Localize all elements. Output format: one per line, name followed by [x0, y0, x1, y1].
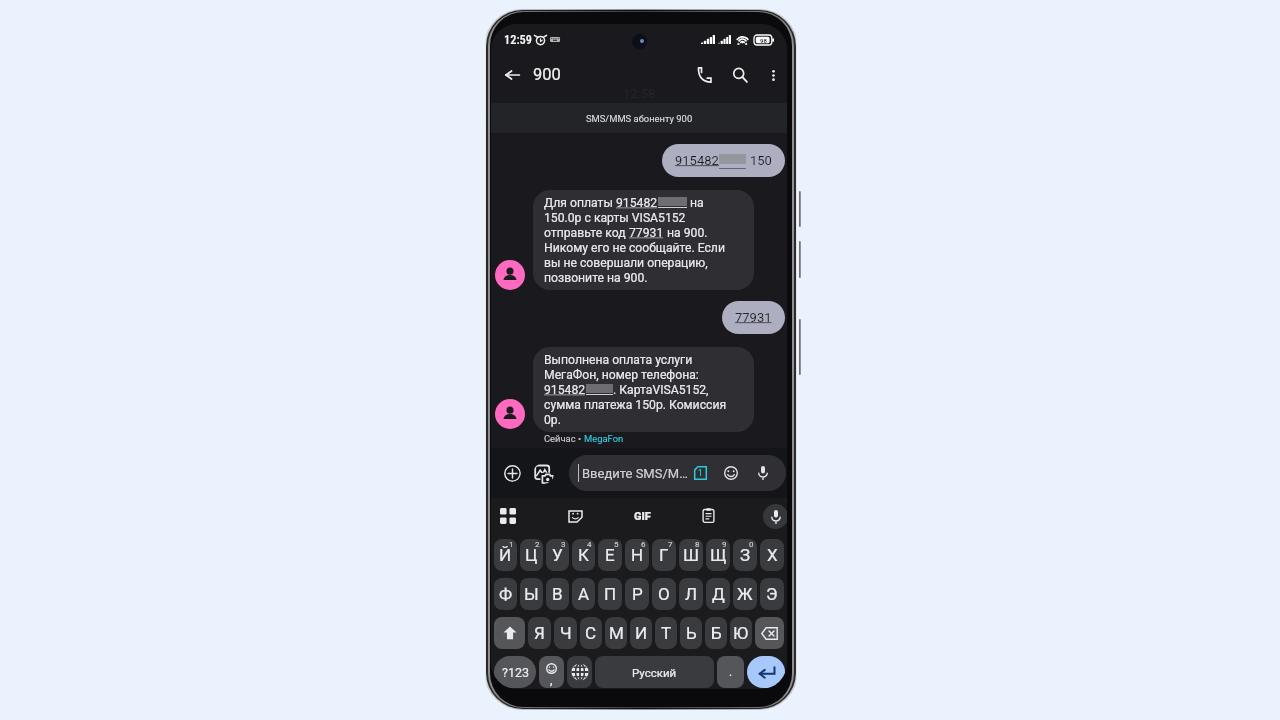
button[interactable]: Г: [652, 539, 676, 571]
staticText: 150.0р с карты VISA5152: [544, 211, 686, 225]
staticText: 900: [533, 65, 561, 84]
button[interactable]: Х: [760, 539, 784, 571]
staticText: 6: [641, 540, 646, 549]
button[interactable]: Stickers: [567, 507, 584, 524]
button[interactable]: У: [546, 539, 569, 571]
button[interactable]: Т: [655, 617, 677, 649]
staticText: К: [578, 545, 589, 565]
staticText: Э: [766, 584, 778, 604]
staticText: 915482: [675, 153, 719, 168]
button[interactable]: И: [630, 617, 652, 649]
staticText: 5: [614, 540, 619, 549]
staticText: Л: [685, 584, 698, 604]
button[interactable]: А: [572, 578, 595, 610]
button[interactable]: Д: [706, 578, 730, 610]
button[interactable]: Emoji: [539, 656, 564, 688]
button[interactable]: Ж: [733, 578, 757, 610]
button[interactable]: Й: [494, 539, 517, 571]
staticText: И: [635, 623, 648, 643]
staticText: на 900.: [664, 226, 708, 240]
button[interactable]: 915482: [662, 144, 785, 177]
button[interactable]: Search: [726, 61, 754, 89]
staticText: МегаФон, номер телефона:: [544, 368, 699, 382]
button[interactable]: Shift: [494, 617, 525, 649]
button[interactable]: Выполнена оплата услуги: [533, 347, 754, 432]
button[interactable]: В: [546, 578, 569, 610]
button[interactable]: Ы: [520, 578, 543, 610]
button[interactable]: Camera: [533, 463, 554, 484]
button[interactable]: Enter: [747, 656, 785, 688]
staticText: В: [552, 584, 563, 604]
button[interactable]: Для оплаты: [533, 190, 754, 290]
staticText: 3: [561, 540, 566, 549]
staticText: О: [658, 584, 670, 604]
button[interactable]: More options: [761, 63, 785, 87]
staticText: Й: [499, 545, 512, 565]
button[interactable]: Русский: [595, 656, 714, 688]
button[interactable]: Backspace: [755, 617, 784, 649]
button[interactable]: SMS/MMS абоненту 900: [491, 103, 787, 133]
button[interactable]: З: [733, 539, 757, 571]
button[interactable]: Р: [625, 578, 649, 610]
button[interactable]: Ч: [554, 617, 577, 649]
staticText: Б: [711, 623, 722, 643]
button[interactable]: Л: [679, 578, 703, 610]
staticText: Ц: [525, 545, 538, 565]
staticText: 2: [535, 540, 540, 549]
button[interactable]: Ь: [680, 617, 702, 649]
staticText: 0: [749, 540, 754, 549]
staticText: Для оплаты: [544, 196, 616, 210]
button[interactable]: Voice input: [763, 504, 787, 529]
staticText: SMS/MMS абоненту 900: [586, 113, 693, 124]
staticText: Введите SMS/M…: [582, 466, 688, 481]
staticText: Выполнена оплата услуги: [544, 353, 693, 367]
staticText: 1: [509, 540, 514, 549]
button[interactable]: Clipboard: [700, 507, 717, 524]
button[interactable]: О: [652, 578, 676, 610]
button[interactable]: Ф: [494, 578, 517, 610]
button[interactable]: Введите SMS/M…: [569, 455, 786, 491]
button[interactable]: Add attachment: [503, 464, 521, 482]
button[interactable]: Back: [498, 61, 526, 89]
button[interactable]: М: [605, 617, 627, 649]
staticText: вы не совершали операцию,: [544, 256, 708, 270]
staticText: Н: [631, 545, 644, 565]
staticText: 150: [750, 153, 772, 168]
button[interactable]: Ц: [520, 539, 543, 571]
staticText: 12:59: [504, 32, 532, 47]
button[interactable]: Я: [528, 617, 551, 649]
staticText: MegaFon: [584, 433, 624, 444]
button[interactable]: К: [572, 539, 595, 571]
button[interactable]: Щ: [706, 539, 730, 571]
button[interactable]: ?123: [494, 656, 536, 688]
button[interactable]: Apps: [500, 508, 516, 524]
staticText: Д: [712, 584, 725, 604]
button[interactable]: П: [598, 578, 622, 610]
button[interactable]: Е: [598, 539, 622, 571]
button[interactable]: 77931: [722, 301, 785, 334]
button[interactable]: С: [580, 617, 602, 649]
staticText: 915482: [544, 383, 586, 397]
staticText: Х: [767, 545, 778, 565]
button[interactable]: Ю: [730, 617, 752, 649]
staticText: А: [578, 584, 590, 604]
staticText: 4: [587, 540, 592, 549]
staticText: Т: [661, 623, 672, 643]
staticText: 915482: [616, 196, 658, 210]
staticText: ?123: [502, 665, 529, 680]
button[interactable]: Ш: [679, 539, 703, 571]
staticText: . КартаVISA5152,: [613, 383, 709, 397]
button[interactable]: Б: [705, 617, 727, 649]
staticText: Ч: [560, 623, 572, 643]
button[interactable]: GIF: [631, 508, 653, 524]
button[interactable]: Language: [567, 656, 592, 688]
button[interactable]: Э: [760, 578, 784, 610]
staticText: 98: [760, 37, 767, 44]
button[interactable]: Н: [625, 539, 649, 571]
staticText: С: [585, 623, 597, 643]
staticText: 0р.: [544, 413, 561, 427]
button[interactable]: Call: [690, 61, 718, 89]
button[interactable]: .: [717, 656, 744, 688]
staticText: Р: [632, 584, 643, 604]
staticText: 77931: [735, 310, 772, 325]
